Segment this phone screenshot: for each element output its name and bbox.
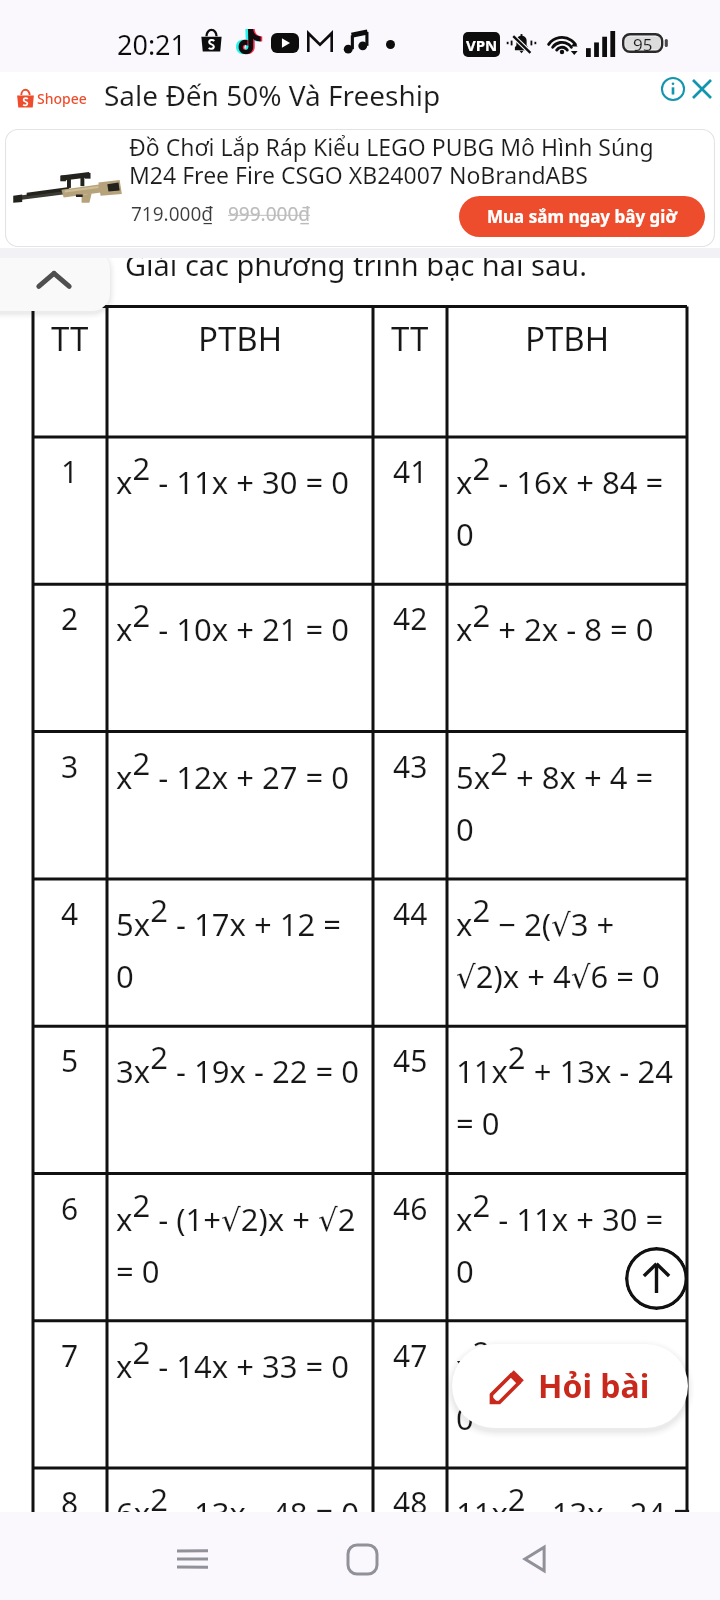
staticText: 1: [61, 451, 79, 492]
staticText: 0: [116, 955, 134, 997]
staticText: x2 - 16x + 84 =: [456, 447, 664, 503]
staticText: 4: [61, 893, 79, 934]
staticText: PTBH: [198, 316, 283, 361]
button[interactable]: Đồ Chơi Lắp Ráp Kiểu LEGO PUBG Mô Hình S…: [5, 129, 715, 247]
staticText: 11x2 - 13x - 24 = 0: [456, 1478, 692, 1576]
staticText: 3x2 - 19x - 22 = 0: [116, 1036, 359, 1092]
button[interactable]: Collapse: [0, 251, 110, 311]
button[interactable]: Hỏi bài: [452, 1344, 688, 1428]
button[interactable]: Back: [505, 1529, 565, 1589]
staticText: PTBH: [525, 316, 610, 361]
staticText: 3: [61, 746, 79, 787]
staticText: Hỏi bài: [538, 1364, 650, 1408]
staticText: 11x2 + 13x - 24: [456, 1036, 673, 1092]
staticText: 6x2 - 13x - 48 = 0: [116, 1478, 359, 1534]
staticText: x2 - 8x - 9 =: [456, 1331, 620, 1387]
staticText: x2 - 11x + 30 =: [456, 1184, 664, 1240]
staticText: x2 − 2(√3 +: [456, 889, 615, 945]
staticText: 5x2 - 17x + 12 =: [116, 889, 341, 945]
staticText: 42: [393, 598, 428, 639]
staticText: x2 - 10x + 21 = 0: [116, 594, 349, 650]
staticText: 45: [393, 1040, 428, 1081]
staticText: 46: [393, 1188, 428, 1229]
button[interactable]: Home: [332, 1529, 392, 1589]
staticText: 95: [633, 33, 653, 53]
staticText: x2 - 12x + 27 = 0: [116, 742, 349, 798]
button[interactable]: Scroll to top: [625, 1247, 688, 1310]
staticText: Đồ Chơi Lắp Ráp Kiểu LEGO PUBG Mô Hình S…: [129, 131, 654, 162]
staticText: = 0: [116, 1250, 160, 1292]
staticText: 6: [61, 1188, 79, 1229]
staticText: Sale Đến 50% Và Freeship: [104, 76, 441, 114]
staticText: 999.000₫: [228, 201, 311, 227]
staticText: VPN: [466, 35, 498, 55]
button[interactable]: Recents: [162, 1529, 222, 1589]
staticText: Mua sắm ngay bây giờ: [487, 205, 677, 228]
staticText: x2 - 14x + 33 = 0: [116, 1331, 349, 1387]
staticText: 43: [393, 746, 428, 787]
staticText: 2: [61, 598, 79, 639]
staticText: M24 Free Fire CSGO XB24007 NoBrandABS: [129, 159, 588, 190]
staticText: 48: [393, 1482, 428, 1523]
button[interactable]: Ad info: [651, 67, 695, 111]
button[interactable]: Close ad: [681, 68, 720, 110]
staticText: x2 - (1+√2)x + √2: [116, 1184, 356, 1240]
staticText: 44: [393, 893, 428, 934]
staticText: 7: [61, 1335, 79, 1376]
staticText: 0: [456, 1250, 474, 1292]
staticText: = 0: [456, 1102, 500, 1144]
staticText: 719.000₫: [131, 201, 214, 227]
button[interactable]: Mua sắm ngay bây giờ: [459, 196, 705, 237]
staticText: TT: [51, 316, 89, 361]
staticText: Giải các phương trình bậc hai sau.: [125, 245, 587, 284]
staticText: 5x2 + 8x + 4 =: [456, 742, 654, 798]
staticText: x2 - 11x + 30 = 0: [116, 447, 349, 503]
staticText: 47: [393, 1335, 428, 1376]
staticText: 0: [456, 1397, 474, 1439]
staticText: 0: [456, 513, 474, 555]
staticText: 20:21: [117, 26, 187, 63]
staticText: √2)x + 4√6 = 0: [456, 955, 660, 997]
staticText: 41: [393, 451, 428, 492]
staticText: TT: [391, 316, 429, 361]
staticText: x2 + 2x - 8 = 0: [456, 594, 654, 650]
staticText: 5: [61, 1040, 79, 1081]
staticText: 0: [456, 808, 474, 850]
staticText: Shopee: [37, 89, 87, 108]
staticText: 8: [61, 1482, 79, 1523]
